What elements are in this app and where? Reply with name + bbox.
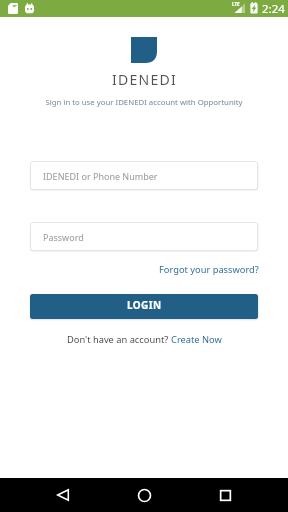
staticText: IDENEDI [112, 70, 177, 89]
staticText: Don't have an account? [67, 333, 171, 346]
staticText: Forgot your password? [159, 263, 259, 276]
staticText: LTE [232, 1, 240, 7]
button[interactable]: Home [120, 478, 168, 512]
staticText: 2:24 [262, 1, 285, 17]
staticText: LOGIN [127, 298, 162, 312]
button[interactable]: LOGIN [30, 294, 258, 319]
button[interactable]: Back [39, 478, 87, 512]
button[interactable]: Password [30, 222, 258, 251]
button[interactable]: IDENEDI or Phone Number [30, 161, 258, 190]
staticText: Password [43, 231, 84, 243]
button[interactable]: Create Now [171, 333, 222, 346]
staticText: IDENEDI or Phone Number [43, 170, 158, 182]
button[interactable]: Recent apps [200, 478, 248, 512]
staticText: Create Now [171, 333, 222, 346]
button[interactable]: Forgot your password? [159, 263, 259, 276]
staticText: Sign in to use your IDENEDI account with… [45, 97, 243, 108]
